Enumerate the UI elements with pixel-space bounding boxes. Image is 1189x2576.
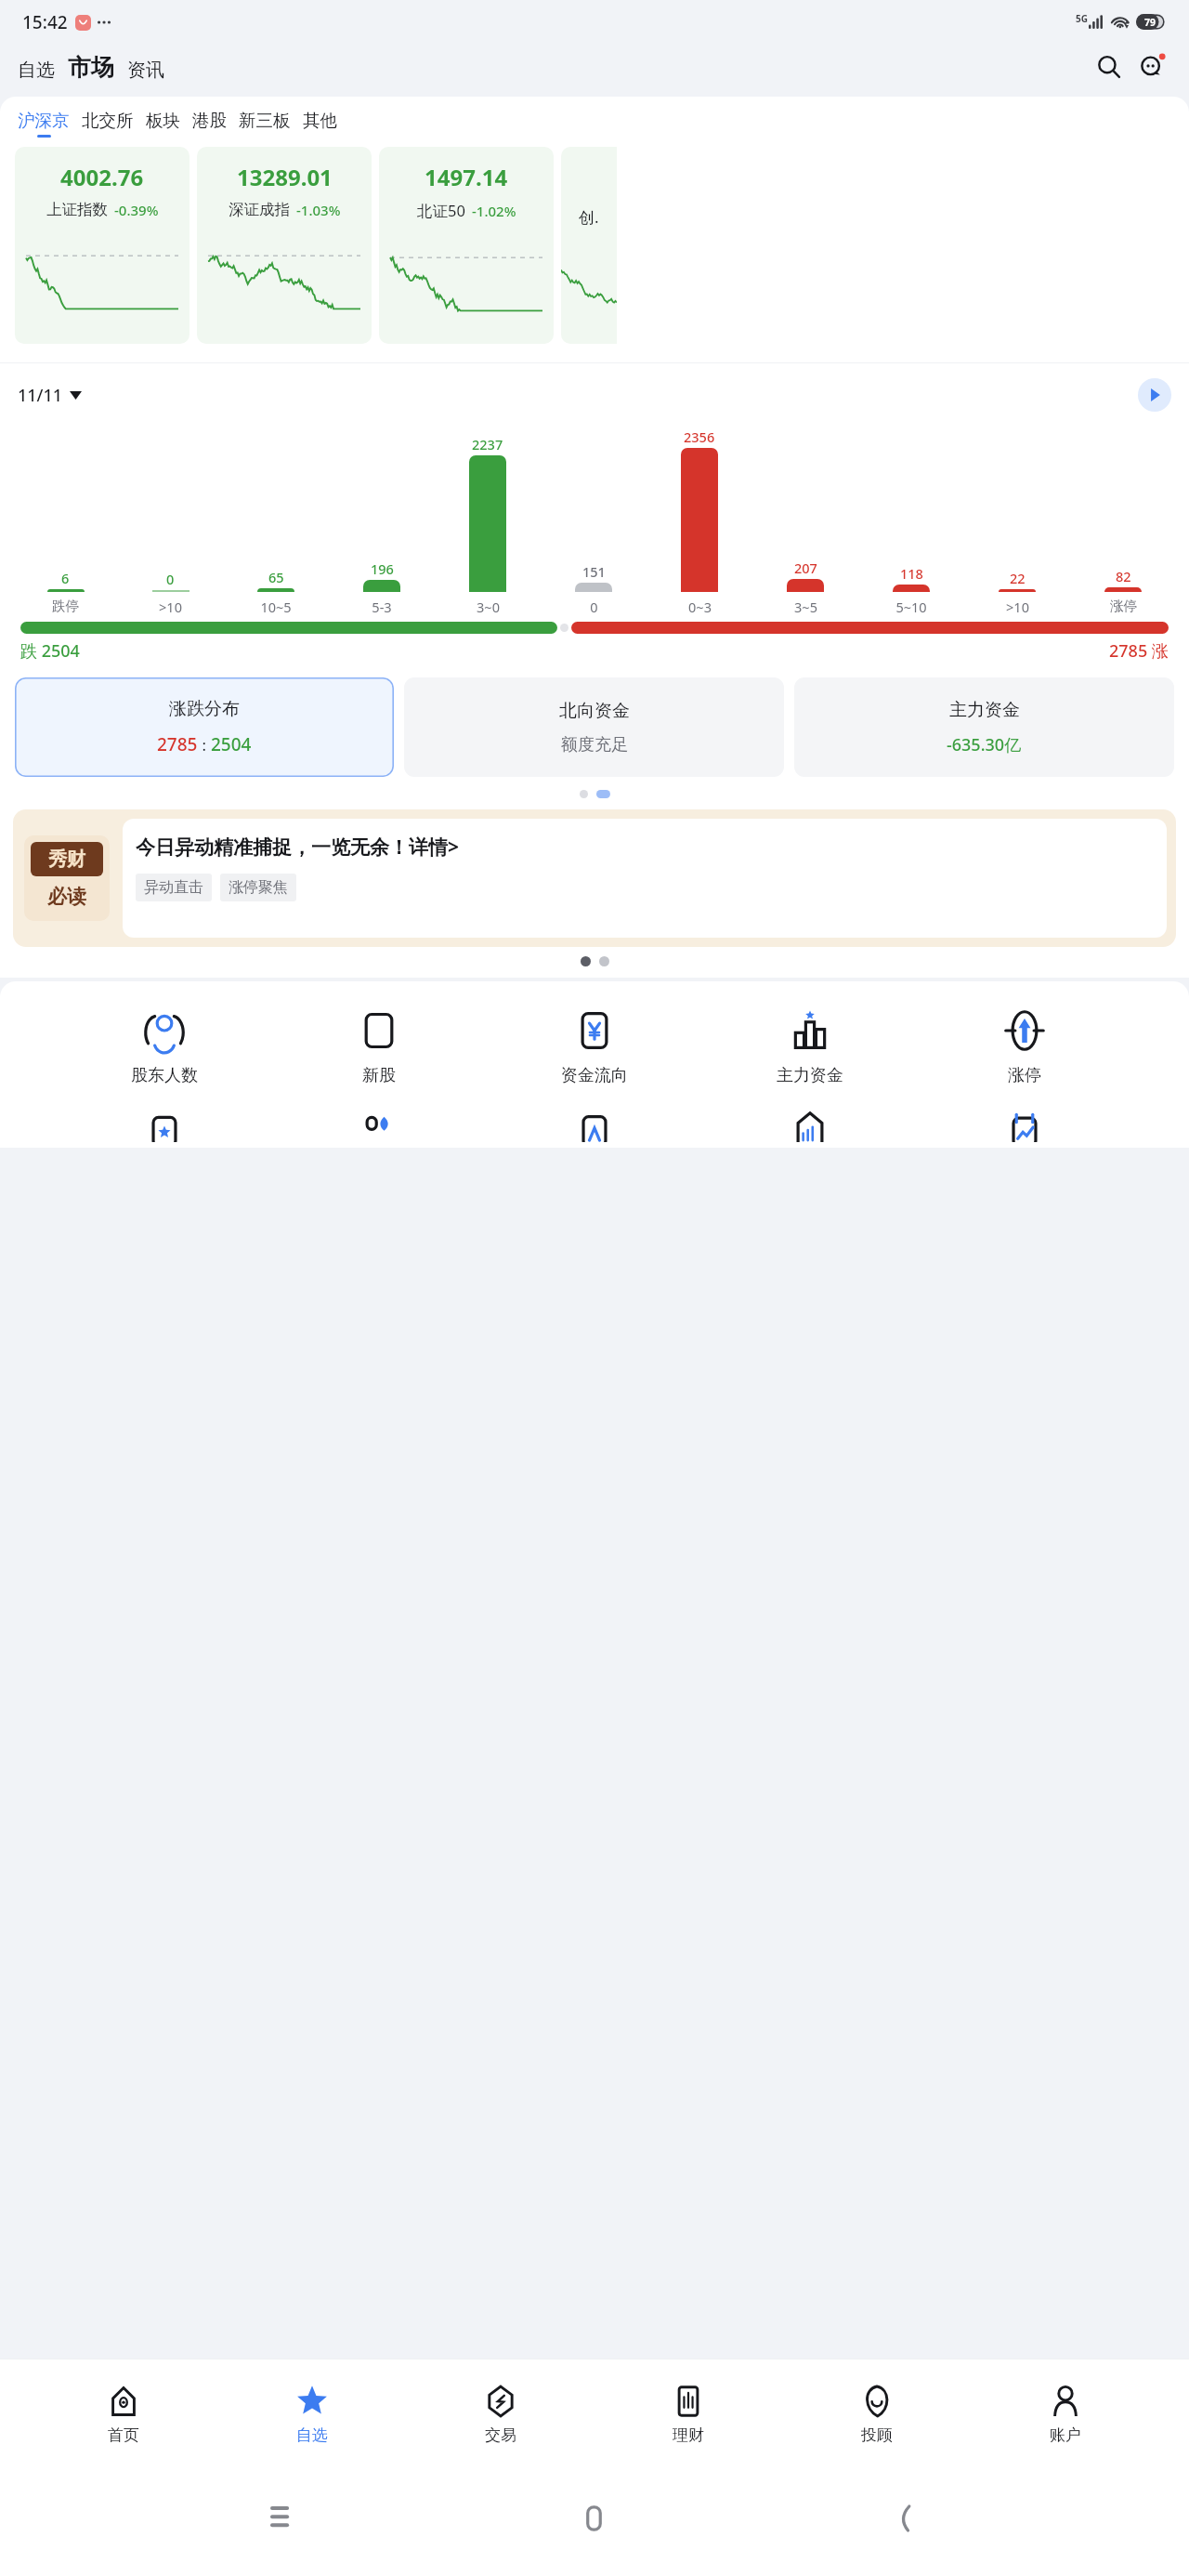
staticText: 市场 bbox=[68, 53, 114, 82]
button[interactable]: 北向资金 bbox=[404, 677, 784, 777]
button[interactable]: Feature bbox=[328, 1107, 430, 1142]
button[interactable]: Search bbox=[1091, 48, 1128, 85]
staticText: 理财 bbox=[673, 2425, 704, 2445]
staticText: 涨停 bbox=[1008, 1065, 1041, 1086]
staticText: 其他 bbox=[303, 110, 337, 131]
staticText: 必读 bbox=[47, 885, 86, 909]
staticText: 资讯 bbox=[127, 59, 164, 82]
button[interactable]: 理财 bbox=[623, 2383, 753, 2445]
staticText: 5-3 bbox=[372, 598, 392, 616]
staticText: 板块 bbox=[146, 110, 180, 131]
button[interactable]: 主力资金 bbox=[759, 1009, 861, 1086]
button[interactable]: 港股 bbox=[192, 110, 239, 138]
staticText: 资金流向 bbox=[561, 1065, 628, 1086]
button[interactable]: 资金流向 bbox=[543, 1009, 646, 1086]
button[interactable]: 账户 bbox=[1000, 2383, 1130, 2445]
staticText: 首页 bbox=[108, 2425, 139, 2445]
button[interactable]: 涨停 bbox=[973, 1009, 1076, 1086]
staticText: -1.02% bbox=[472, 202, 516, 220]
staticText: 创. bbox=[579, 206, 599, 228]
staticText: 新三板 bbox=[239, 110, 291, 131]
staticText: 10~5 bbox=[260, 598, 292, 616]
staticText: >10 bbox=[1006, 598, 1029, 616]
staticText: 151 bbox=[582, 562, 606, 581]
button[interactable]: 自选 bbox=[18, 59, 55, 82]
staticText: 6 bbox=[61, 569, 70, 587]
button[interactable]: 创. bbox=[561, 147, 617, 344]
staticText: 118 bbox=[900, 564, 923, 583]
staticText: 自选 bbox=[18, 59, 55, 82]
staticText: 3~5 bbox=[794, 598, 817, 616]
button[interactable]: 秀财 bbox=[13, 809, 1176, 947]
button[interactable]: 股东人数 bbox=[113, 1009, 216, 1086]
button[interactable]: 新三板 bbox=[239, 110, 303, 138]
button[interactable]: 异动直击 bbox=[144, 878, 203, 897]
staticText: 异动直击 bbox=[144, 878, 203, 897]
button[interactable]: 新股 bbox=[328, 1009, 430, 1086]
staticText: 秀财 bbox=[48, 848, 85, 871]
staticText: 北交所 bbox=[82, 110, 134, 131]
staticText: 上证指数 bbox=[46, 200, 108, 219]
staticText: 82 bbox=[1116, 567, 1131, 585]
button[interactable]: 其他 bbox=[303, 110, 337, 138]
staticText: 北证50 bbox=[417, 200, 465, 221]
staticText: 15:42 bbox=[22, 10, 68, 34]
button[interactable]: Feature bbox=[543, 1107, 646, 1142]
staticText: 港股 bbox=[192, 110, 227, 131]
button[interactable]: Home bbox=[568, 2492, 621, 2544]
staticText: 北向资金 bbox=[559, 700, 630, 722]
staticText: 13289.01 bbox=[237, 162, 333, 192]
staticText: 主力资金 bbox=[777, 1065, 843, 1086]
button[interactable]: 11/11 bbox=[18, 384, 82, 407]
button[interactable]: 1497.14 bbox=[379, 147, 554, 344]
staticText: 跌 2504 bbox=[20, 639, 80, 663]
button[interactable]: Feature bbox=[113, 1107, 216, 1142]
staticText: 5~10 bbox=[895, 598, 927, 616]
staticText: 账户 bbox=[1050, 2425, 1081, 2445]
button[interactable]: 首页 bbox=[59, 2383, 189, 2445]
staticText: 2356 bbox=[684, 427, 715, 446]
staticText: -0.39% bbox=[114, 201, 159, 219]
staticText: 沪深京 bbox=[18, 110, 70, 131]
button[interactable]: 市场 bbox=[68, 53, 114, 82]
staticText: 11/11 bbox=[18, 384, 63, 407]
staticText: 2785 涨 bbox=[1109, 639, 1169, 663]
staticText: 4002.76 bbox=[60, 162, 144, 192]
staticText: 涨停聚焦 bbox=[229, 878, 288, 897]
button[interactable]: Play bbox=[1138, 378, 1171, 412]
staticText: 5G bbox=[1076, 12, 1088, 25]
staticText: 22 bbox=[1010, 569, 1026, 587]
button[interactable]: 板块 bbox=[146, 110, 192, 138]
staticText: -1.03% bbox=[296, 201, 341, 219]
staticText: 2504 bbox=[211, 732, 252, 756]
button[interactable]: 投顾 bbox=[812, 2383, 942, 2445]
staticText: >10 bbox=[159, 598, 182, 616]
button[interactable]: 13289.01 bbox=[197, 147, 372, 344]
staticText: : bbox=[198, 734, 211, 756]
button[interactable]: 交易 bbox=[436, 2383, 566, 2445]
staticText: -635.30亿 bbox=[947, 733, 1022, 756]
button[interactable]: Recents bbox=[258, 2492, 310, 2544]
button[interactable]: 沪深京 bbox=[18, 110, 82, 138]
button[interactable]: 涨跌分布 bbox=[15, 677, 394, 777]
button[interactable]: Back bbox=[879, 2492, 931, 2544]
button[interactable]: Feature bbox=[973, 1107, 1076, 1142]
button[interactable]: Messages bbox=[1133, 48, 1170, 85]
button[interactable]: 4002.76 bbox=[15, 147, 189, 344]
button[interactable]: Feature bbox=[759, 1107, 861, 1142]
staticText: 207 bbox=[794, 559, 817, 577]
button[interactable]: 主力资金 bbox=[794, 677, 1174, 777]
staticText: 79 bbox=[1144, 16, 1156, 29]
staticText: 投顾 bbox=[861, 2425, 893, 2445]
staticText: 股东人数 bbox=[131, 1065, 198, 1086]
button[interactable]: 资讯 bbox=[127, 59, 164, 82]
button[interactable]: 北交所 bbox=[82, 110, 146, 138]
staticText: 涨停 bbox=[1110, 598, 1137, 614]
button[interactable]: 涨停聚焦 bbox=[229, 878, 288, 897]
staticText: 1497.14 bbox=[425, 162, 508, 192]
staticText: 0 bbox=[590, 598, 598, 616]
staticText: 交易 bbox=[485, 2425, 516, 2445]
staticText: 今日异动精准捕捉，一览无余！详情> bbox=[136, 834, 460, 861]
staticText: 196 bbox=[371, 559, 394, 578]
button[interactable]: 自选 bbox=[247, 2383, 377, 2445]
